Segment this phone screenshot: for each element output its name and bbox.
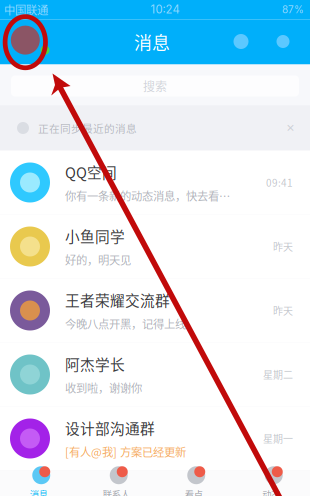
button[interactable]: 王者荣耀交流群 (0, 278, 310, 342)
staticText: 你有一条新的动态消息，快去看看吧 (65, 187, 232, 204)
staticText: 联系人 (103, 487, 130, 496)
staticText: 正在同步最近的消息 (38, 120, 137, 136)
staticText: 星期一 (263, 431, 293, 446)
button[interactable]: 看点 (155, 470, 232, 496)
staticText: 收到啦，谢谢你 (65, 379, 142, 396)
staticText: 消息 (134, 29, 170, 55)
staticText: 星期二 (263, 367, 293, 382)
staticText: 10:24 (150, 3, 179, 16)
button[interactable]: 正在同步最近的消息 (0, 105, 310, 150)
staticText: 消息 (30, 487, 48, 496)
staticText: 设计部沟通群 (65, 417, 155, 438)
staticText: 87% (282, 3, 304, 16)
staticText: [有人@我] 方案已经更新 (65, 443, 186, 460)
staticText: 09:41 (266, 175, 293, 190)
staticText: 看点 (185, 487, 203, 496)
button[interactable]: QQ空间 (0, 150, 310, 214)
button[interactable]: 设计部沟通群 (0, 406, 310, 470)
button[interactable]: 小鱼同学 (0, 214, 310, 278)
staticText: 动态 (262, 487, 280, 496)
staticText: 阿杰学长 (65, 353, 125, 374)
staticText: QQ空间 (65, 161, 117, 182)
staticText: 中国联通 (4, 1, 48, 18)
staticText: 昨天 (273, 239, 293, 254)
staticText: 今晚八点开黑，记得上线 (65, 315, 186, 332)
staticText: 王者荣耀交流群 (65, 289, 170, 310)
button[interactable]: 消息 (0, 470, 77, 496)
button[interactable]: 动态 (232, 470, 310, 496)
button[interactable]: More (268, 26, 298, 56)
staticText: 搜索 (143, 77, 167, 95)
staticText: ✕ (286, 122, 295, 134)
button[interactable]: Add friend (226, 26, 256, 56)
staticText: 好的，明天见 (65, 251, 131, 268)
button[interactable]: 搜索 (11, 75, 299, 96)
button[interactable]: 联系人 (77, 470, 155, 496)
button[interactable]: Profile (7, 22, 43, 58)
staticText: 昨天 (273, 303, 293, 318)
button[interactable]: 阿杰学长 (0, 342, 310, 406)
staticText: 小鱼同学 (65, 225, 125, 246)
